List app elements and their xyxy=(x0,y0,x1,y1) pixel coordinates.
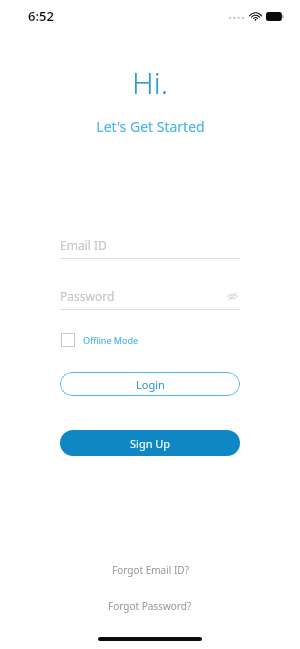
staticText: 6:52 xyxy=(28,7,54,25)
staticText: Hi. xyxy=(132,62,168,103)
staticText: Forgot Password? xyxy=(108,599,192,613)
button[interactable]: Email ID xyxy=(60,237,240,259)
button[interactable]: Password xyxy=(60,288,240,310)
staticText: Offline Mode xyxy=(83,334,139,346)
button[interactable]: Login xyxy=(60,372,240,396)
button[interactable]: Offline Mode xyxy=(60,330,140,350)
staticText: Sign Up xyxy=(130,436,171,451)
button[interactable]: Sign Up xyxy=(60,430,240,456)
staticText: Login xyxy=(136,377,165,392)
staticText: Password xyxy=(60,288,224,304)
staticText: Let's Get Started xyxy=(96,117,205,136)
staticText: Forgot Email ID? xyxy=(112,563,189,577)
button[interactable]: Show password xyxy=(224,288,240,304)
button[interactable]: Forgot Email ID? xyxy=(102,559,199,581)
staticText: Email ID xyxy=(60,237,240,253)
button[interactable]: Forgot Password? xyxy=(98,595,202,617)
